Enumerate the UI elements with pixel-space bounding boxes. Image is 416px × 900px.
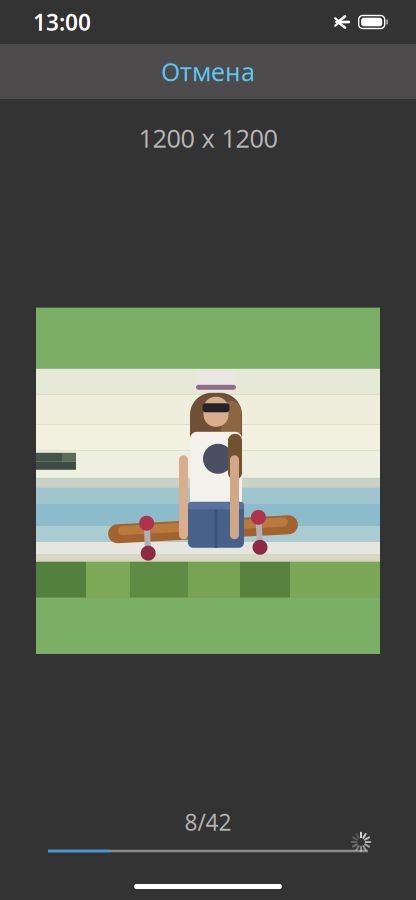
button[interactable]: Отмена [128, 44, 288, 99]
staticText: Отмена [161, 55, 255, 88]
staticText: 8/42 [184, 807, 231, 837]
staticText: 13:00 [33, 7, 91, 37]
staticText: 1200 x 1200 [138, 121, 277, 155]
